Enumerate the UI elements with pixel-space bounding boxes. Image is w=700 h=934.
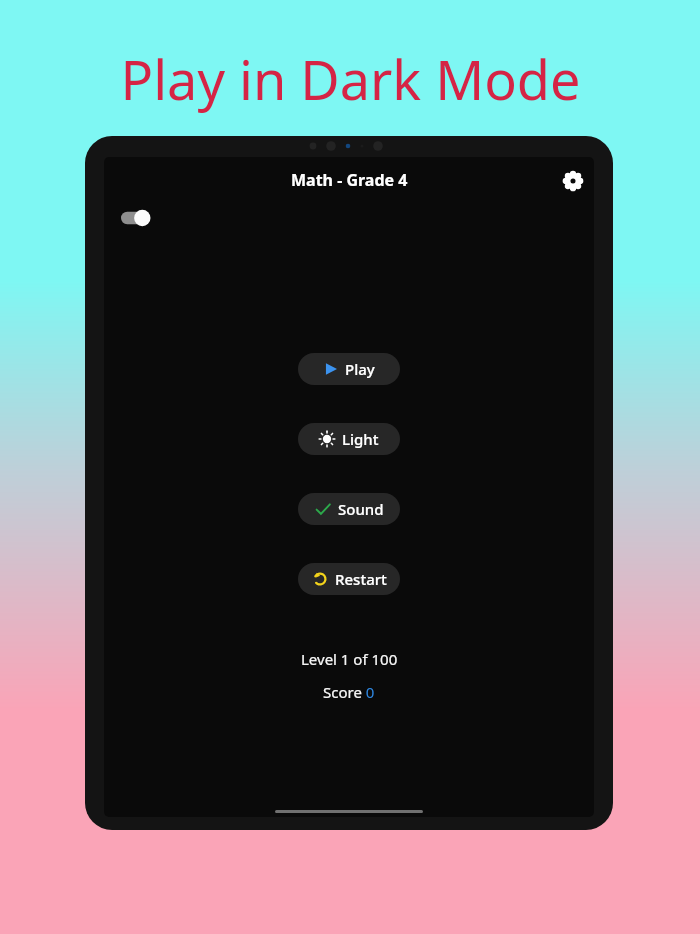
button[interactable]: Light mode [298,423,400,455]
staticText: Play in Dark Mode [120,42,581,116]
staticText: Light [342,429,379,449]
staticText: Sound [338,499,384,519]
staticText: Level 1 of 100 [301,649,398,669]
button[interactable]: Play [298,353,400,385]
staticText: Score 0 [323,682,375,702]
staticText: Restart [335,569,387,589]
staticText: Play [345,359,375,379]
button[interactable]: Toggle dark mode [121,208,153,228]
button[interactable]: Restart [298,563,400,595]
button[interactable]: Settings [558,166,588,196]
staticText: Math - Grade 4 [291,169,408,191]
button[interactable]: Sound [298,493,400,525]
